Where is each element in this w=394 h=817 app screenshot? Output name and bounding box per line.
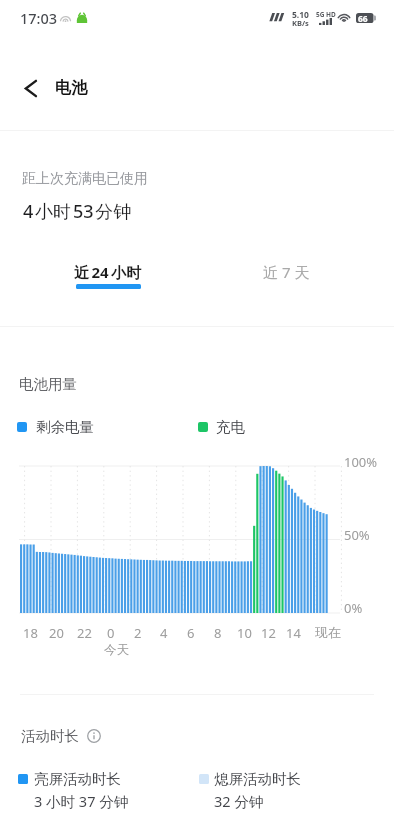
staticText: 0% — [344, 599, 363, 617]
staticText: 17:03 — [20, 8, 58, 28]
staticText: 5G — [316, 10, 325, 19]
staticText: 6 — [187, 624, 195, 642]
button[interactable]: 近 7 天 — [263, 262, 310, 282]
staticText: 2 — [134, 624, 142, 642]
button[interactable]: Back — [12, 70, 48, 106]
staticText: 100% — [344, 453, 378, 471]
staticText: 近 7 天 — [263, 262, 310, 282]
button[interactable]: 熄屏活动时长 — [199, 770, 286, 790]
button[interactable]: 电池 — [55, 78, 87, 98]
staticText: 32 分钟 — [214, 791, 264, 811]
staticText: 充电 — [216, 418, 245, 436]
staticText: 今天 — [104, 642, 129, 658]
staticText: 活动时长 — [21, 727, 79, 745]
staticText: 3 小时 37 分钟 — [34, 791, 129, 811]
staticText: 8 — [214, 624, 222, 642]
staticText: 0 — [107, 624, 115, 642]
staticText: 现在 — [315, 624, 341, 640]
staticText: 熄屏活动时长 — [214, 770, 301, 788]
staticText: 12 — [261, 624, 276, 642]
staticText: HD — [326, 10, 336, 19]
staticText: 22 — [77, 624, 92, 642]
staticText: 66 — [358, 13, 368, 23]
staticText: 剩余电量 — [36, 418, 94, 436]
staticText: 4 小时 53 分钟 — [23, 199, 132, 224]
button[interactable]: Info — [87, 729, 101, 743]
staticText: 10 — [237, 624, 252, 642]
staticText: 20 — [49, 624, 64, 642]
staticText: KB/s — [292, 18, 309, 28]
staticText: 50% — [344, 526, 370, 544]
button[interactable]: 近 24 小时 — [74, 262, 142, 282]
staticText: 18 — [23, 624, 38, 642]
staticText: 亮屏活动时长 — [34, 770, 121, 788]
staticText: 14 — [286, 624, 301, 642]
staticText: 4 — [160, 624, 168, 642]
staticText: 5.10 — [292, 9, 309, 21]
button[interactable]: 亮屏活动时长 — [18, 770, 113, 790]
staticText: 距上次充满电已使用 — [22, 170, 148, 188]
staticText: 近 24 小时 — [74, 262, 142, 282]
staticText: 电池用量 — [19, 375, 77, 393]
